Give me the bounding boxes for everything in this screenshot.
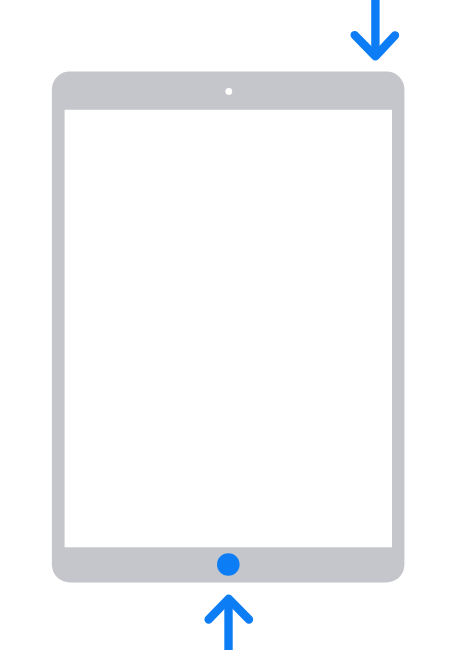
button[interactable]: Tablet orientation illustration bbox=[0, 0, 474, 650]
